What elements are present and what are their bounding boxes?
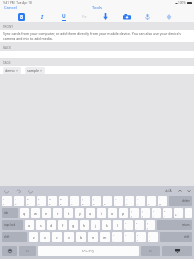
button[interactable]: f — [58, 220, 67, 230]
button[interactable]: Tab — [2, 208, 18, 218]
button[interactable]: o — [108, 208, 117, 218]
button[interactable]: s — [36, 220, 45, 230]
button[interactable]: e — [42, 208, 51, 218]
staticText: 3 — [27, 202, 29, 205]
button[interactable]: Camera — [116, 11, 137, 22]
button[interactable]: ! — [2, 196, 12, 206]
button[interactable]: + — [124, 220, 133, 230]
staticText: i — [101, 211, 102, 216]
staticText: return — [182, 223, 190, 227]
button[interactable]: { — [130, 208, 139, 218]
staticText: % — [49, 197, 52, 200]
button[interactable]: Bold — [11, 11, 32, 22]
button[interactable]: ) — [92, 196, 101, 206]
button[interactable]: Caps lock — [2, 220, 23, 230]
button[interactable]: Italic — [32, 11, 53, 22]
button[interactable]: Shift — [160, 232, 192, 242]
button[interactable]: b — [76, 232, 86, 242]
button[interactable]: Revert — [27, 188, 33, 194]
staticText: m — [103, 235, 107, 240]
button[interactable]: Shift — [2, 232, 27, 242]
button[interactable]: $ — [37, 196, 46, 206]
staticText: 5 — [49, 202, 51, 205]
button[interactable]: d — [47, 220, 56, 230]
button[interactable]: demo — [3, 67, 21, 74]
button[interactable]: | — [136, 196, 145, 206]
staticText: Cancel — [4, 5, 17, 11]
button[interactable]: a — [25, 220, 34, 230]
button[interactable]: ¥ — [147, 196, 156, 206]
button[interactable]: Previous field — [177, 188, 183, 194]
button[interactable]: Convert — [141, 246, 160, 256]
button[interactable]: ( — [81, 196, 90, 206]
button[interactable]: Clear formatting — [74, 11, 95, 22]
staticText: shift — [184, 235, 190, 239]
button[interactable]: _ — [148, 232, 158, 242]
button[interactable]: Redo — [15, 188, 21, 194]
button[interactable]: & — [59, 196, 68, 206]
button[interactable]: * — [135, 220, 144, 230]
staticText: TAGS — [3, 61, 11, 65]
button[interactable]: " — [14, 196, 24, 206]
button[interactable]: } — [146, 220, 155, 230]
button[interactable]: Cancel — [0, 5, 21, 11]
button[interactable]: i — [97, 208, 106, 218]
button[interactable]: j — [91, 220, 100, 230]
button[interactable]: n — [88, 232, 98, 242]
staticText: { — [131, 209, 132, 212]
button[interactable]: r — [53, 208, 62, 218]
staticText: q — [23, 211, 26, 216]
staticText: ~ — [126, 197, 128, 200]
button[interactable]: * — [163, 208, 172, 218]
button[interactable]: + — [152, 208, 161, 218]
button[interactable]: t — [64, 208, 73, 218]
button[interactable]: 0 — [103, 196, 112, 206]
button[interactable]: u — [86, 208, 95, 218]
button[interactable] — [185, 208, 192, 218]
staticText: delete — [182, 199, 190, 203]
button[interactable]: m — [100, 232, 110, 242]
button[interactable]: Next field — [186, 188, 192, 194]
button[interactable]: w — [31, 208, 40, 218]
staticText: ¥ — [148, 202, 150, 205]
button[interactable]: ひらがな — [38, 246, 139, 256]
button[interactable]: Record audio — [137, 11, 158, 22]
button[interactable]: Tools — [88, 5, 106, 11]
button[interactable]: sample — [25, 67, 45, 74]
button[interactable]: Undo — [3, 188, 9, 194]
button[interactable]: p — [119, 208, 128, 218]
button[interactable]: v — [64, 232, 74, 242]
button[interactable]: c — [52, 232, 62, 242]
button[interactable]: Hide keyboard — [162, 246, 192, 256]
button[interactable]: # — [26, 196, 35, 206]
button[interactable]: Emoji — [2, 246, 17, 256]
button[interactable]: Draw — [158, 11, 179, 22]
button[interactable]: l — [113, 220, 122, 230]
button[interactable]: Attach — [95, 11, 116, 22]
button[interactable]: > — [124, 232, 134, 242]
staticText: tab — [4, 211, 8, 215]
button[interactable]: ? — [136, 232, 146, 242]
staticText: 8 — [82, 202, 84, 205]
button[interactable]: z — [29, 232, 38, 242]
button[interactable]: ` — [158, 196, 167, 206]
button[interactable]: む — [174, 208, 183, 218]
button[interactable]: ' — [70, 196, 79, 206]
button[interactable]: x — [40, 232, 50, 242]
staticText: BACK — [3, 46, 11, 50]
button[interactable]: } — [141, 208, 150, 218]
button[interactable]: k — [102, 220, 111, 230]
button[interactable]: < — [112, 232, 122, 242]
button[interactable]: g — [69, 220, 78, 230]
button[interactable]: Underline — [53, 11, 74, 22]
button[interactable]: q — [20, 208, 29, 218]
button[interactable]: % — [48, 196, 57, 206]
button[interactable]: h — [80, 220, 89, 230]
button[interactable]: ~ — [125, 196, 134, 206]
button[interactable]: Delete — [169, 196, 192, 206]
button[interactable]: y — [75, 208, 84, 218]
button[interactable]: Return — [157, 220, 192, 230]
button[interactable]: = — [114, 196, 123, 206]
button[interactable]: Switch input — [19, 246, 36, 256]
